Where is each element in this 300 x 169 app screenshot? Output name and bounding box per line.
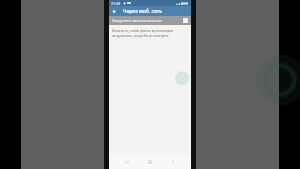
button[interactable]: Back bbox=[168, 157, 178, 167]
button[interactable]: Back bbox=[109, 6, 119, 16]
staticText: Через моб. сеть bbox=[123, 8, 162, 15]
button[interactable]: Home bbox=[145, 157, 155, 167]
staticText: Включить, чтобы файлы мультимедиа автома… bbox=[112, 28, 188, 32]
staticText: 21:38 bbox=[111, 1, 121, 6]
staticText: загружались, когда Вы используете мобиль… bbox=[112, 33, 188, 37]
staticText: Загрузить автоматически bbox=[112, 18, 162, 23]
button[interactable]: Загрузить автоматически bbox=[109, 16, 191, 25]
button[interactable]: Recent apps bbox=[122, 157, 132, 167]
